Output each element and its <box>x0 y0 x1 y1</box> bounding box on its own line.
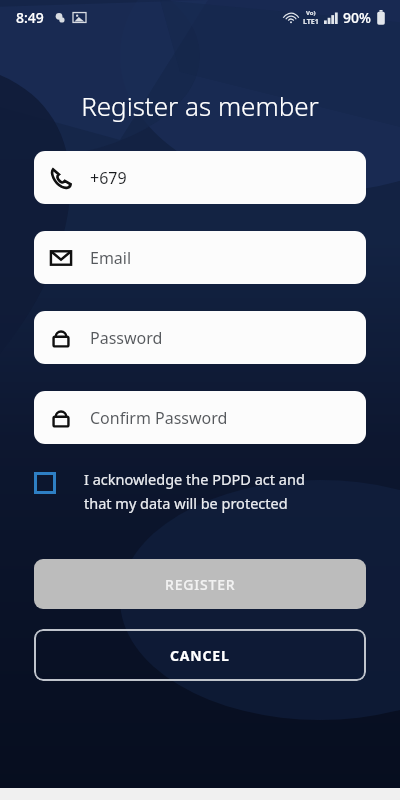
staticText: that my data will be protected <box>84 493 288 513</box>
button[interactable]: CANCEL <box>34 629 366 681</box>
staticText: REGISTER <box>165 575 236 594</box>
staticText: LTE1 <box>303 17 319 27</box>
button[interactable]: +679 <box>34 151 366 204</box>
button[interactable]: I acknowledge the PDPD act and <box>34 469 366 513</box>
staticText: Vo) <box>306 9 316 17</box>
staticText: 90% <box>343 8 371 27</box>
staticText: CANCEL <box>170 646 230 665</box>
staticText: Email <box>90 247 132 269</box>
staticText: Password <box>90 327 163 349</box>
button[interactable]: REGISTER <box>34 559 366 609</box>
staticText: I acknowledge the PDPD act and <box>84 469 305 489</box>
staticText: Confirm Password <box>90 407 228 429</box>
staticText: Register as member <box>0 88 400 123</box>
button[interactable]: Email <box>34 231 366 284</box>
button[interactable]: Confirm Password <box>34 391 366 444</box>
staticText: 8:49 <box>16 8 44 27</box>
staticText: +679 <box>90 167 127 189</box>
button[interactable]: Password <box>34 311 366 364</box>
